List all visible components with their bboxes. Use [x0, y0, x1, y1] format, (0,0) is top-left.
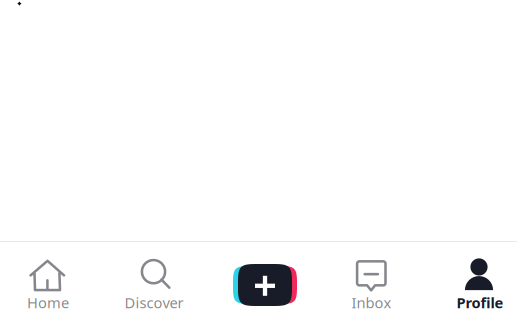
- staticText: Discover: [124, 293, 183, 312]
- staticText: Profile: [456, 293, 503, 312]
- button[interactable]: Profile: [430, 248, 517, 317]
- staticText: Inbox: [351, 293, 391, 312]
- button[interactable]: Discover: [104, 248, 204, 317]
- button[interactable]: Inbox: [321, 248, 421, 317]
- staticText: Home: [27, 293, 69, 312]
- button[interactable]: Create: [215, 248, 315, 317]
- button[interactable]: Home: [0, 248, 98, 317]
